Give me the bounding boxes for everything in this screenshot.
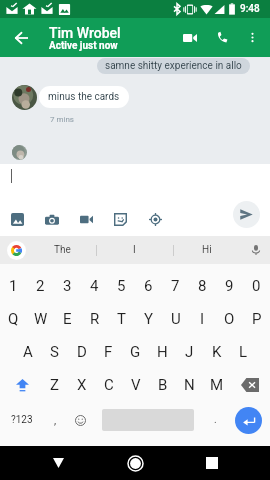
staticText: Hi (202, 244, 212, 256)
button[interactable]: X (68, 372, 95, 398)
staticText: Q (8, 310, 19, 328)
button[interactable]: 6 (135, 273, 162, 299)
staticText: K (212, 343, 222, 361)
button[interactable]: Emoji (70, 409, 91, 431)
staticText: O (224, 310, 235, 328)
button[interactable]: Location (145, 209, 166, 230)
staticText: 5 (117, 277, 126, 295)
staticText: 6 (144, 277, 153, 295)
button[interactable]: 4 (81, 273, 108, 299)
button[interactable]: 3 (54, 273, 81, 299)
staticText: 8 (198, 277, 207, 295)
button[interactable]: Backspace (236, 374, 263, 396)
button[interactable]: H (149, 339, 176, 365)
button[interactable]: O (216, 306, 243, 332)
staticText: R (90, 310, 100, 328)
staticText: 0 (252, 277, 261, 295)
button[interactable]: ?123 (7, 409, 37, 431)
button[interactable]: G (122, 339, 149, 365)
button[interactable]: Z (41, 372, 68, 398)
staticText: T (117, 310, 126, 328)
staticText: L (239, 343, 248, 361)
button[interactable]: I (189, 306, 216, 332)
button[interactable]: K (203, 339, 230, 365)
button[interactable]: Video (76, 209, 97, 230)
button[interactable]: Enter (235, 407, 262, 434)
staticText: A (23, 343, 33, 361)
button[interactable]: minus the cards (39, 86, 129, 108)
staticText: C (104, 376, 114, 394)
button[interactable]: Google (7, 241, 26, 260)
button[interactable]: 9 (216, 273, 243, 299)
button[interactable]: M (203, 372, 230, 398)
staticText: J (185, 343, 194, 361)
staticText: samne shitty experience in allo (105, 60, 242, 72)
button[interactable]: J (176, 339, 203, 365)
button[interactable]: Back (3, 20, 39, 56)
staticText: S (50, 343, 59, 361)
button[interactable]: Recents (198, 449, 226, 477)
button[interactable]: P (243, 306, 270, 332)
staticText: The (54, 244, 71, 256)
staticText: minus the cards (48, 91, 120, 103)
staticText: M (210, 376, 224, 394)
staticText: I (200, 310, 205, 328)
button[interactable]: R (81, 306, 108, 332)
staticText: W (34, 310, 48, 328)
button[interactable]: Home (121, 449, 149, 477)
button[interactable]: Shift (9, 374, 36, 396)
button[interactable]: W (27, 306, 54, 332)
button[interactable]: 2 (27, 273, 54, 299)
staticText: Z (50, 376, 59, 394)
staticText: V (131, 376, 141, 394)
button[interactable]: . (205, 409, 225, 431)
button[interactable]: B (149, 372, 176, 398)
staticText: ?123 (11, 414, 33, 426)
staticText: 2 (36, 277, 45, 295)
button[interactable]: Stickers (110, 209, 131, 230)
button[interactable]: F (95, 339, 122, 365)
button[interactable]: Camera (41, 209, 62, 230)
button[interactable]: T (108, 306, 135, 332)
staticText: 1 (9, 277, 18, 295)
button[interactable]: samne shitty experience in allo (97, 58, 250, 74)
button[interactable]: A (14, 339, 41, 365)
staticText: B (158, 376, 168, 394)
staticText: G (130, 343, 141, 361)
button[interactable]: Video call (175, 23, 204, 52)
button[interactable]: Voice input (249, 243, 263, 257)
staticText: X (77, 376, 87, 394)
button[interactable]: More options (239, 24, 266, 51)
button[interactable]: S (41, 339, 68, 365)
staticText: Y (144, 310, 154, 328)
staticText: Active just now (49, 40, 118, 52)
button[interactable]: L (230, 339, 257, 365)
button[interactable]: 1 (0, 273, 27, 299)
button[interactable]: Q (0, 306, 27, 332)
staticText: E (63, 310, 72, 328)
button[interactable]: Gallery (7, 209, 28, 230)
button[interactable]: 8 (189, 273, 216, 299)
button[interactable]: 0 (243, 273, 270, 299)
button[interactable]: U (162, 306, 189, 332)
staticText: 9 (225, 277, 234, 295)
staticText: P (252, 310, 262, 328)
button[interactable]: Send (233, 201, 260, 228)
staticText: F (104, 343, 113, 361)
button[interactable]: Back (44, 449, 72, 477)
button[interactable]: D (68, 339, 95, 365)
staticText: 7 mins (50, 115, 74, 124)
staticText: 7 (171, 277, 180, 295)
button[interactable]: E (54, 306, 81, 332)
staticText: Tim Wrobel (49, 25, 121, 41)
button[interactable]: Call (208, 23, 237, 52)
button[interactable]: , (45, 409, 65, 431)
button[interactable]: Y (135, 306, 162, 332)
button[interactable]: 7 (162, 273, 189, 299)
button[interactable]: N (176, 372, 203, 398)
staticText: 4 (90, 277, 99, 295)
button[interactable]: V (122, 372, 149, 398)
button[interactable]: C (95, 372, 122, 398)
button[interactable]: 5 (108, 273, 135, 299)
